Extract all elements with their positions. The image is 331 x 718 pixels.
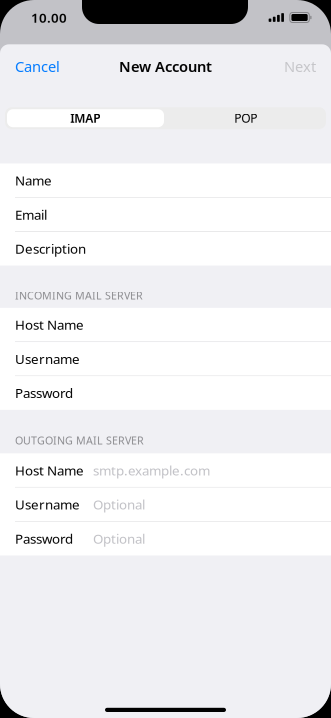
staticText: OUTGOING MAIL SERVER [15,433,144,447]
staticText: Password [15,384,73,402]
staticText: POP [234,110,257,126]
button[interactable]: Cancel [0,44,75,88]
staticText: Next [284,57,316,76]
staticText: Host Name [15,316,84,333]
staticText: Name [15,171,52,189]
button[interactable]: Description [0,232,331,265]
staticText: Username [15,496,80,513]
staticText: New Account [119,57,212,76]
button[interactable]: Username [0,488,331,521]
button[interactable]: Host Name [0,308,331,341]
staticText: Password [15,530,73,547]
button[interactable]: Name [0,164,331,197]
staticText: Optional [93,496,145,513]
button[interactable]: POP [165,107,326,129]
button[interactable]: Host Name [0,454,331,487]
staticText: INCOMING MAIL SERVER [15,288,143,302]
staticText: 10.00 [31,9,67,26]
button[interactable]: Password [0,376,331,410]
staticText: Host Name [15,461,84,479]
button[interactable]: IMAP [5,107,165,129]
staticText: Description [15,240,86,257]
staticText: smtp.example.com [93,461,210,479]
staticText: Cancel [15,57,60,76]
button[interactable]: Password [0,522,331,555]
staticText: IMAP [70,110,100,126]
button[interactable]: Email [0,198,331,231]
staticText: Username [15,350,80,368]
staticText: Optional [93,530,145,547]
button[interactable]: Username [0,342,331,375]
staticText: Email [15,206,47,223]
button[interactable]: Next [269,44,331,88]
